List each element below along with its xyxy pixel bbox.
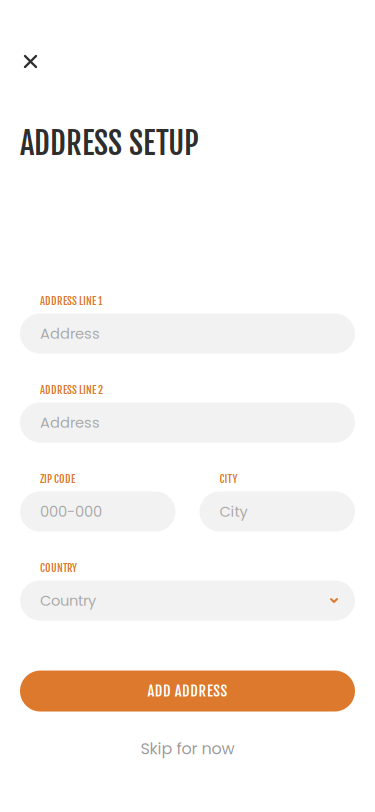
staticText: Skip for now [140,737,234,760]
button[interactable]: Skip for now [20,735,355,761]
staticText: COUNTRY [40,561,77,575]
staticText: City [219,501,247,522]
staticText: ZIP CODE [40,472,75,486]
staticText: Address [40,412,100,433]
staticText: ADD ADDRESS [147,682,227,700]
button[interactable]: ADD ADDRESS [20,670,355,711]
button[interactable]: Address [20,402,355,442]
button[interactable]: Address [20,313,355,353]
staticText: 000-000 [40,501,102,522]
staticText: ADDRESS LINE 2 [40,383,103,397]
staticText: ADDRESS SETUP [20,124,199,162]
button[interactable]: 000-000 [20,491,175,531]
staticText: CITY [219,472,237,486]
button[interactable]: City [199,491,355,531]
staticText: Country [40,590,96,611]
staticText: Address [40,323,100,344]
button[interactable]: Country [20,580,355,620]
button[interactable]: Close [12,43,49,80]
staticText: ADDRESS LINE 1 [40,294,102,308]
